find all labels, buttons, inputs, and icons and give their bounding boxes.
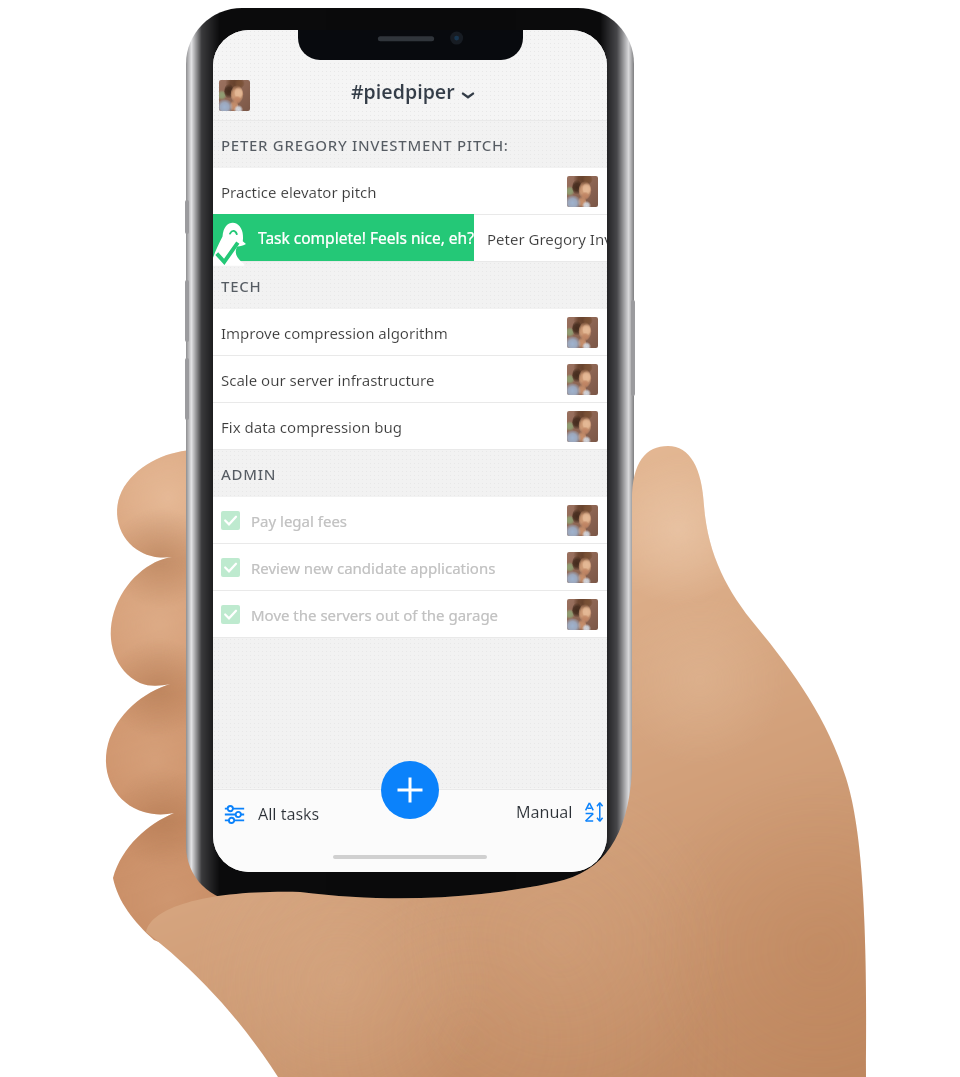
button[interactable]: Add task [381, 761, 439, 819]
staticText: #piedpiper [351, 78, 455, 105]
staticText: Pay legal fees [251, 511, 348, 531]
staticText: Peter Gregory Investment pitch [487, 229, 607, 249]
button[interactable]: Review new candidate applications [213, 544, 607, 591]
staticText: Move the servers out of the garage [251, 605, 499, 625]
staticText: Scale our server infrastructure [221, 370, 435, 390]
staticText: Fix data compression bug [221, 417, 402, 437]
button[interactable]: Peter Gregory Investment pitch [213, 215, 607, 262]
staticText: Manual [516, 801, 573, 823]
button[interactable]: Practice elevator pitch [213, 168, 607, 215]
staticText: Review new candidate applications [251, 558, 496, 578]
staticText: PETER GREGORY INVESTMENT PITCH: [221, 135, 509, 155]
staticText: Practice elevator pitch [221, 182, 377, 202]
button[interactable]: Scale our server infrastructure [213, 356, 607, 403]
staticText: Improve compression algorithm [221, 323, 448, 343]
button[interactable]: Task complete! Feels nice, eh? [213, 214, 474, 261]
staticText: All tasks [258, 803, 320, 825]
staticText: Task complete! Feels nice, eh? [258, 227, 474, 248]
button[interactable]: Improve compression algorithm [213, 309, 607, 356]
button[interactable]: #piedpiper [351, 78, 469, 105]
button[interactable]: Profile [219, 80, 250, 111]
button[interactable]: Move the servers out of the garage [213, 591, 607, 638]
button[interactable]: Manual [516, 801, 593, 823]
staticText: TECH [221, 276, 262, 296]
button[interactable]: Pay legal fees [213, 497, 607, 544]
button[interactable]: Fix data compression bug [213, 403, 607, 450]
button[interactable]: All tasks [224, 803, 320, 825]
staticText: ADMIN [221, 464, 277, 484]
